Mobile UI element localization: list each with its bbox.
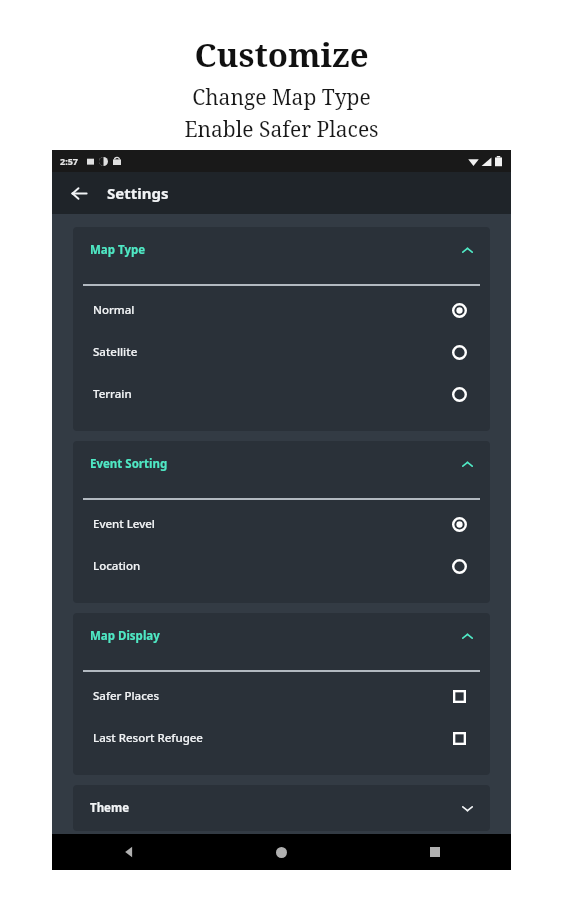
button[interactable]: Theme xyxy=(73,785,490,831)
button[interactable]: Back xyxy=(52,834,205,870)
button[interactable]: Checkbox xyxy=(447,726,471,750)
staticText: Last Resort Refugee xyxy=(93,730,203,746)
button[interactable]: Not selected xyxy=(447,554,471,578)
staticText: Theme xyxy=(90,800,130,816)
staticText: Event Level xyxy=(93,516,155,532)
button[interactable]: Event Sorting xyxy=(73,441,490,487)
button[interactable]: Selected xyxy=(447,298,471,322)
button[interactable]: Map Type xyxy=(73,227,490,273)
button[interactable]: Recent apps xyxy=(358,834,511,870)
button[interactable]: Not selected xyxy=(447,382,471,406)
staticText: Event Sorting xyxy=(90,456,168,472)
staticText: Enable Safer Places xyxy=(184,115,379,144)
button[interactable]: Safer Places xyxy=(73,675,490,717)
button[interactable]: Checkbox xyxy=(447,684,471,708)
staticText: Settings xyxy=(107,183,169,203)
button[interactable]: Last Resort Refugee xyxy=(73,717,490,759)
staticText: Satellite xyxy=(93,344,138,360)
button[interactable]: Satellite xyxy=(73,331,490,373)
staticText: Map Display xyxy=(90,628,160,644)
staticText: Change Map Type xyxy=(192,83,371,112)
staticText: Location xyxy=(93,558,141,574)
button[interactable]: Home xyxy=(205,834,358,870)
staticText: Safer Places xyxy=(93,688,159,704)
button[interactable]: Selected xyxy=(447,512,471,536)
button[interactable]: Terrain xyxy=(73,373,490,415)
staticText: Map Type xyxy=(90,242,146,258)
button[interactable]: Normal xyxy=(73,289,490,331)
staticText: Customize xyxy=(194,32,369,77)
button[interactable]: Back xyxy=(63,177,95,209)
button[interactable]: Not selected xyxy=(447,340,471,364)
staticText: Normal xyxy=(93,302,135,318)
button[interactable]: Event Level xyxy=(73,503,490,545)
button[interactable]: Map Display xyxy=(73,613,490,659)
staticText: Terrain xyxy=(93,386,132,402)
button[interactable]: Location xyxy=(73,545,490,587)
staticText: 2:57 xyxy=(60,155,78,167)
